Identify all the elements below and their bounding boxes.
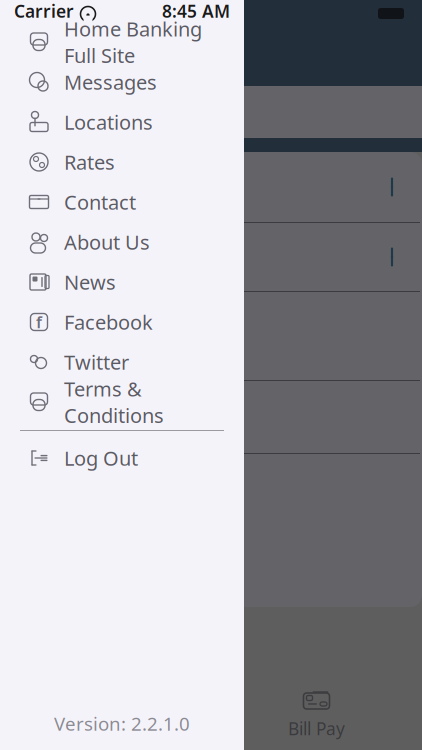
button[interactable]: Home Banking Full Site [0,22,244,62]
staticText: Contact [64,189,136,215]
staticText: Deposit [74,717,136,740]
button[interactable]: News [0,262,244,302]
button[interactable]: Contact [0,182,244,222]
staticText: Messages [64,69,157,95]
staticText: About Us [64,229,150,255]
staticText: f [36,311,42,333]
button[interactable]: Rates [0,142,244,182]
button[interactable]: About Us [0,222,244,262]
staticText: Bill Pay [288,717,345,740]
button[interactable]: Terms & Conditions [0,382,244,422]
staticText: Locations [64,109,153,135]
staticText: Carrier [14,0,74,22]
staticText: News [64,269,116,295]
staticText: Facebook [64,309,153,335]
staticText: Terms & Conditions [64,375,164,428]
staticText: Version: 2.2.1.0 [54,711,190,736]
button[interactable]: f [0,302,244,342]
staticText: Scheduled [38,99,134,125]
button[interactable]: Log Out [0,438,244,478]
button[interactable]: Deposit [0,686,211,740]
button[interactable]: Messages [0,62,244,102]
staticText: Log Out [64,445,138,471]
staticText: Home Banking Full Site [64,15,202,68]
button[interactable]: Bill Pay [211,686,422,740]
staticText: Twitter [64,349,129,375]
button[interactable]: Locations [0,102,244,142]
button[interactable]: Twitter [0,342,244,382]
staticText: Rates [64,149,115,175]
staticText: 8:45 AM [162,0,230,22]
